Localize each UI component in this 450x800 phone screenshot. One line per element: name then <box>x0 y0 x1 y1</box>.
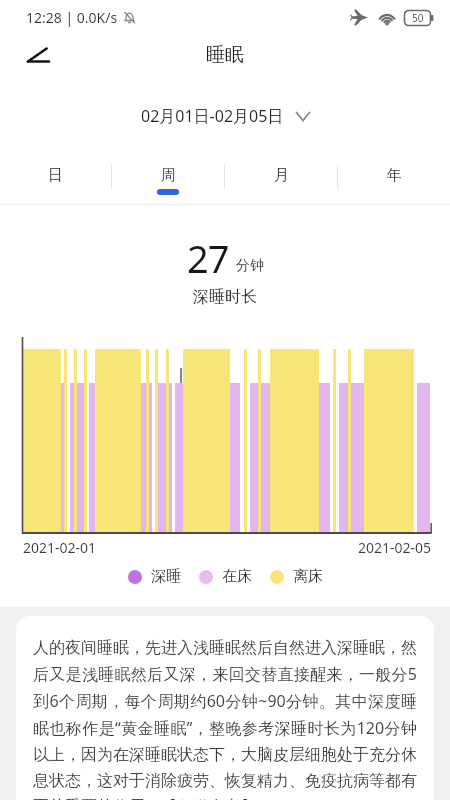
staticText: 人的夜间睡眠，先进入浅睡眠然后自然进入深睡眠，然后又是浅睡眠然后又深，来回交替直… <box>33 638 417 800</box>
staticText: 月 <box>274 166 289 185</box>
button[interactable]: 周 <box>112 157 224 197</box>
staticText: 12:28 | 0.0K/s <box>26 8 118 27</box>
staticText: 50 <box>412 11 424 25</box>
staticText: 深睡时长 <box>193 287 257 307</box>
button[interactable]: 日 <box>0 157 111 197</box>
staticText: 分钟 <box>236 257 264 275</box>
button[interactable]: 年 <box>338 157 450 197</box>
staticText: 在床 <box>222 567 252 586</box>
button[interactable]: 02月01日-02月05日 <box>0 105 450 127</box>
staticText: 深睡 <box>151 567 181 586</box>
staticText: 27 <box>187 232 229 284</box>
staticText: 2021-02-05 <box>358 538 432 557</box>
staticText: 离床 <box>293 567 323 586</box>
staticText: 02月01日-02月05日 <box>141 105 284 127</box>
button[interactable]: 月 <box>225 157 337 197</box>
staticText: 周 <box>161 166 176 185</box>
staticText: 睡眠 <box>206 43 244 67</box>
staticText: 日 <box>48 166 63 185</box>
staticText: 年 <box>387 166 402 185</box>
button[interactable] <box>16 34 60 76</box>
staticText: 2021-02-01 <box>23 538 97 557</box>
